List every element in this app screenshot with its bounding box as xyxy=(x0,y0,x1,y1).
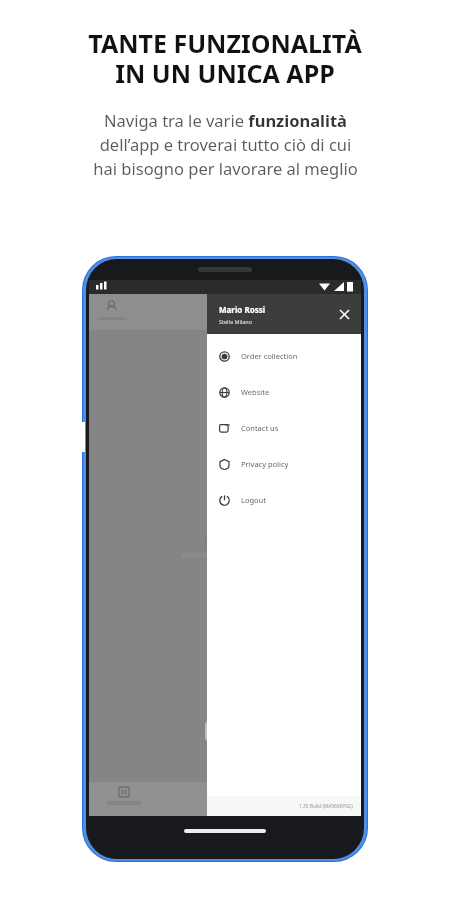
button[interactable]: Order collection xyxy=(207,338,361,374)
staticText: TANTE FUNZIONALITÀ IN UN UNICA APP xyxy=(88,26,362,91)
staticText: Mario Rossi xyxy=(219,304,266,315)
button[interactable]: Contact us xyxy=(207,410,361,446)
staticText: Stella Milano xyxy=(219,318,253,325)
staticText: Contact us xyxy=(241,423,279,433)
staticText: Order collection xyxy=(241,351,298,361)
button[interactable]: Close drawer xyxy=(335,305,353,323)
button[interactable]: Privacy policy xyxy=(207,446,361,482)
staticText: Website xyxy=(241,387,270,397)
button[interactable]: Logout xyxy=(207,482,361,518)
staticText: Logout xyxy=(241,495,266,505)
staticText: Privacy policy xyxy=(241,459,289,469)
staticText: Naviga tra le varie funzionalità dell’ap… xyxy=(93,109,358,180)
button[interactable]: Website xyxy=(207,374,361,410)
staticText: 1.35 Build (MA569EPSG) xyxy=(299,803,353,810)
